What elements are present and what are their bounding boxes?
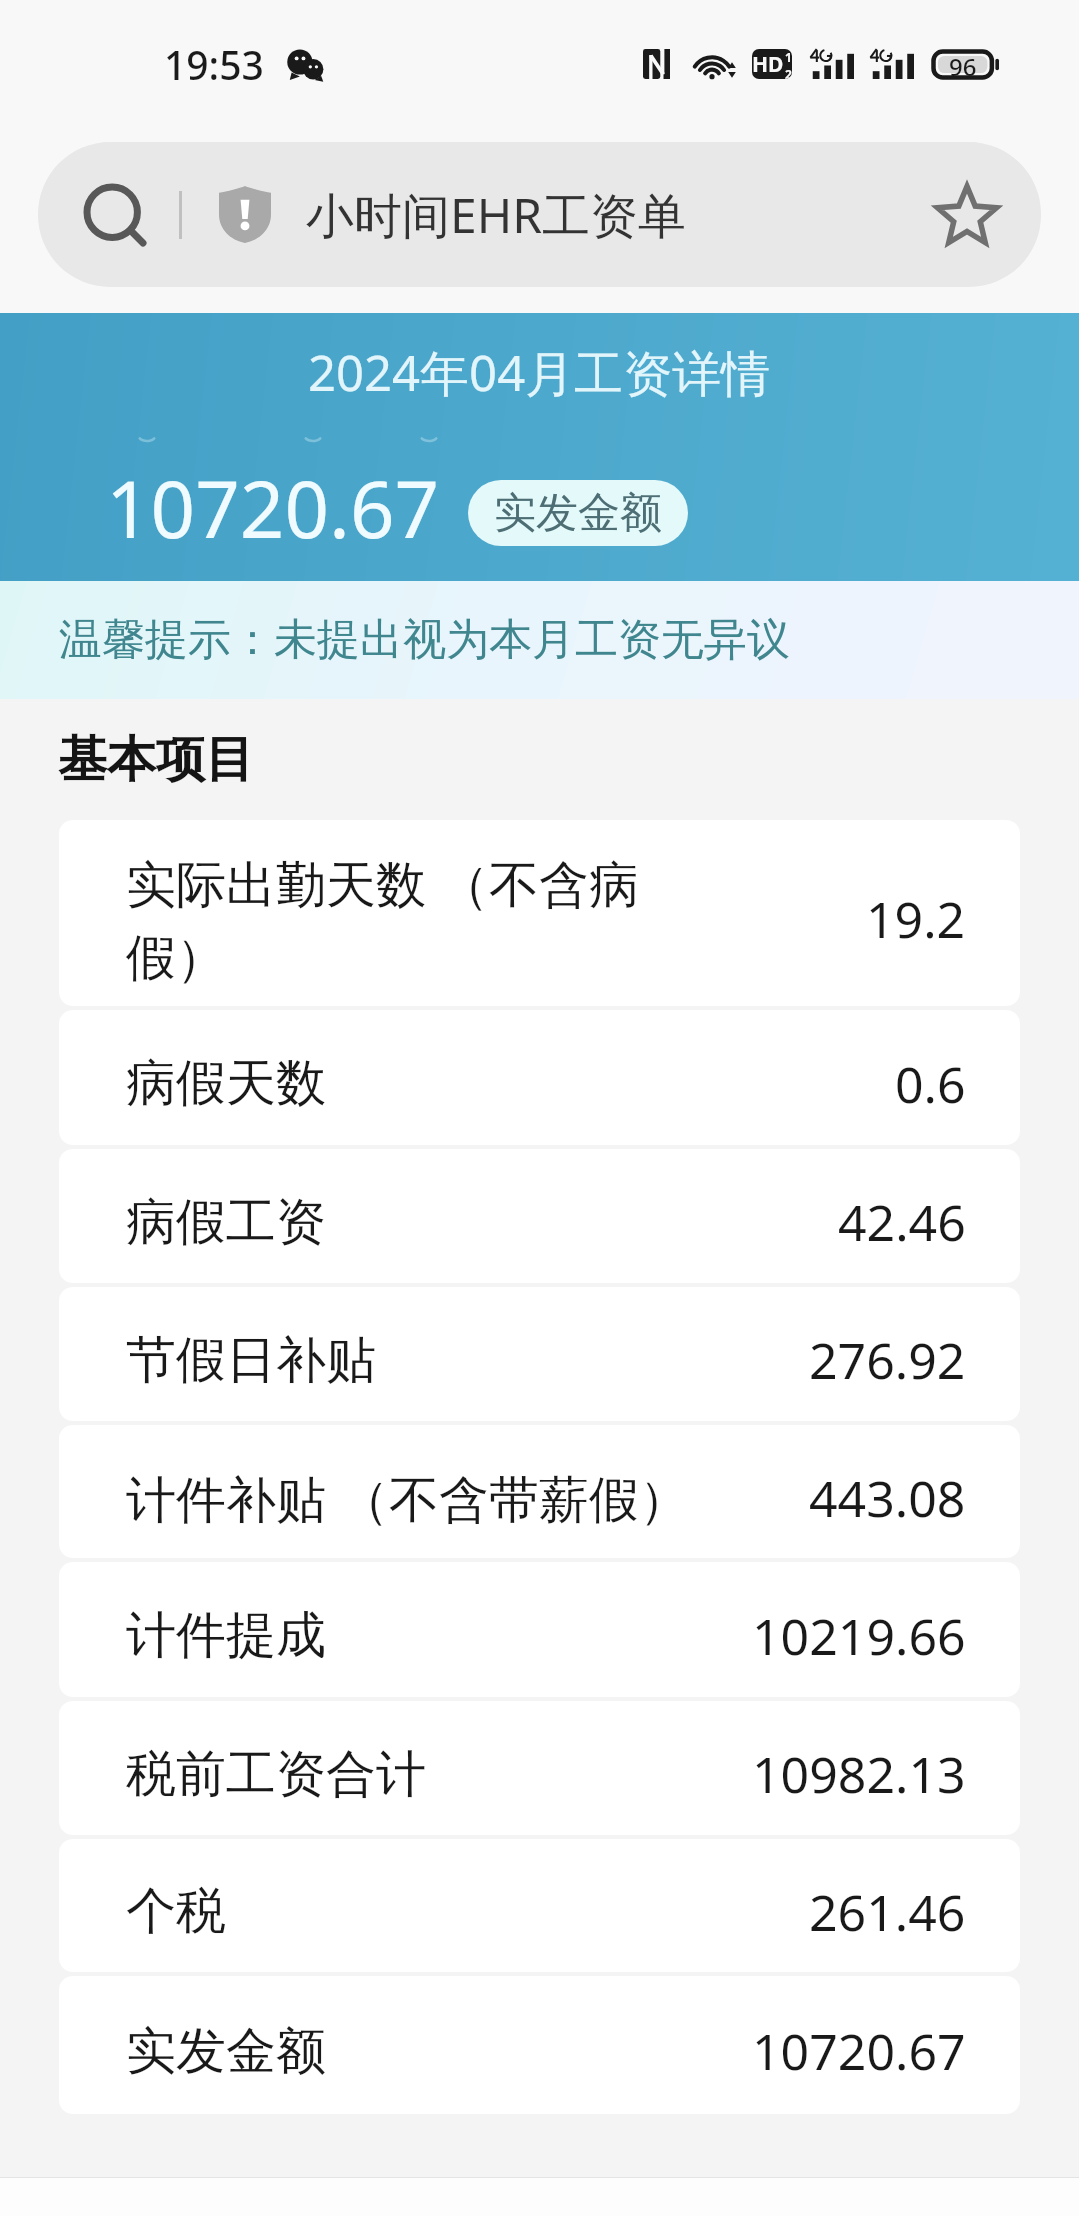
other: Search	[87, 187, 143, 243]
staticText: 计件补贴 （不含带薪假）	[126, 1464, 706, 1532]
staticText: 计件提成	[126, 1604, 706, 1667]
button[interactable]: 节假日补贴	[59, 1287, 1020, 1421]
staticText: 0.6	[895, 1050, 966, 1118]
staticText: 96	[949, 50, 977, 79]
staticText: 个税	[126, 1880, 706, 1943]
button[interactable]: 病假工资	[59, 1149, 1020, 1283]
staticText: 10219.66	[752, 1602, 966, 1670]
staticText: 温馨提示：未提出视为本月工资无异议	[59, 613, 790, 667]
staticText: HD	[752, 50, 784, 79]
button[interactable]: 税前工资合计	[59, 1701, 1020, 1835]
button[interactable]: 实发金额	[468, 480, 688, 546]
staticText: 病假工资	[126, 1191, 706, 1254]
staticText: 实发金额	[494, 487, 662, 540]
staticText: 税前工资合计	[126, 1743, 706, 1806]
staticText: 10982.13	[752, 1740, 966, 1808]
staticText: 276.92	[809, 1326, 966, 1394]
staticText: 19.2	[866, 885, 966, 953]
staticText: 19:53	[164, 38, 264, 91]
staticText: 实际出勤天数 （不含病 假）	[126, 849, 706, 990]
button[interactable]: Favorite	[930, 176, 1004, 254]
staticText: 小时间EHR工资单	[306, 182, 687, 248]
staticText: 节假日补贴	[126, 1329, 706, 1392]
button[interactable]: 计件补贴 （不含带薪假）	[59, 1425, 1020, 1558]
staticText: 10720.67	[106, 455, 440, 561]
button[interactable]: 病假天数	[59, 1010, 1020, 1145]
staticText: 2	[785, 66, 792, 79]
button[interactable]: 实际出勤天数 （不含病 假）	[59, 820, 1020, 1006]
staticText: 病假天数	[126, 1052, 706, 1115]
button[interactable]: Search	[38, 142, 1041, 287]
staticText: 1	[785, 49, 792, 65]
button[interactable]: 实发金额	[59, 1976, 1020, 2114]
staticText: 42.46	[838, 1188, 966, 1256]
staticText: 基本项目	[58, 729, 254, 791]
button[interactable]: 计件提成	[59, 1562, 1020, 1697]
staticText: 2024年04月工资详情	[308, 339, 771, 406]
staticText: 261.46	[809, 1878, 966, 1946]
staticText: 10720.67	[752, 2017, 966, 2085]
button[interactable]: 个税	[59, 1839, 1020, 1972]
staticText: 443.08	[809, 1464, 966, 1532]
staticText: 实发金额	[126, 2020, 706, 2083]
